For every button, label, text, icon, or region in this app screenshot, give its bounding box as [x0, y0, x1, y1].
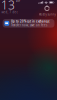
staticText: 20 — [16, 0, 20, 2]
button[interactable]: Weather widget — [38, 6, 55, 16]
staticText: Transfer now, save on fees — [11, 23, 47, 27]
staticText: 13 — [1, 0, 15, 13]
staticText: wed, 7 dec — [1, 10, 17, 14]
button[interactable]: Up to 20% cut in exchange — [3, 19, 54, 28]
staticText: Up to 20% cut in exchange — [11, 20, 50, 23]
staticText: Mostly sunny — [38, 13, 55, 16]
